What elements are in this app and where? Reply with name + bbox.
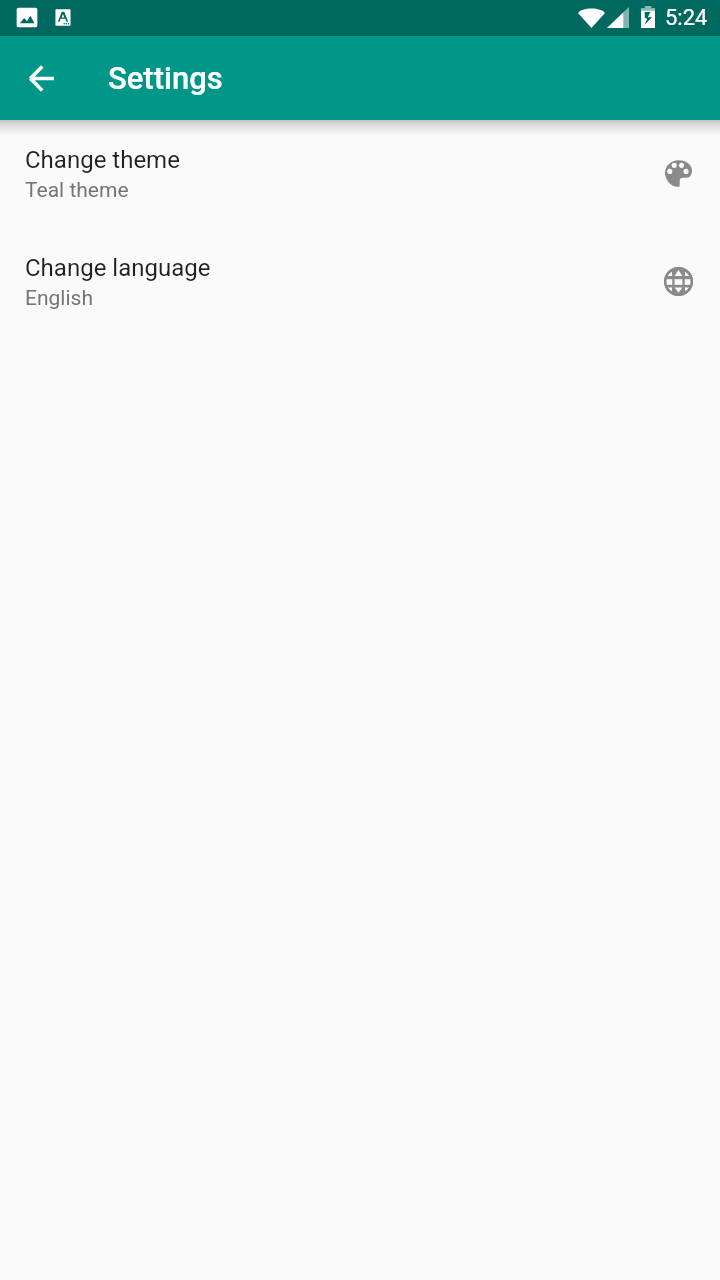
staticText: Settings <box>108 60 223 96</box>
staticText: 5:24 <box>665 5 708 31</box>
other: Change language <box>663 266 693 296</box>
button[interactable]: Change language <box>0 244 720 352</box>
staticText: Change language <box>25 254 211 282</box>
staticText: English <box>25 286 93 311</box>
button[interactable]: Back <box>18 54 66 102</box>
staticText: Change theme <box>25 146 180 174</box>
button[interactable]: Change theme <box>0 136 720 244</box>
staticText: Teal theme <box>25 178 129 203</box>
other: Change theme <box>663 158 693 188</box>
